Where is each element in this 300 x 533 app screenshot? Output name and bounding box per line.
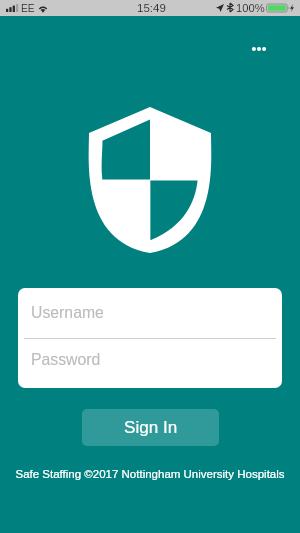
button[interactable]: Sign In xyxy=(82,409,219,446)
button[interactable]: Username xyxy=(18,288,282,338)
staticText: EE xyxy=(21,3,35,14)
staticText: Password xyxy=(31,351,101,369)
staticText: Safe Staffing ©2017 Nottingham Universit… xyxy=(15,468,285,481)
button[interactable]: Password xyxy=(18,339,282,388)
staticText: 100% xyxy=(236,2,265,15)
staticText: Username xyxy=(31,304,104,322)
staticText: Sign In xyxy=(124,418,178,437)
staticText: 15:49 xyxy=(137,2,166,15)
button[interactable]: More options xyxy=(247,37,271,61)
